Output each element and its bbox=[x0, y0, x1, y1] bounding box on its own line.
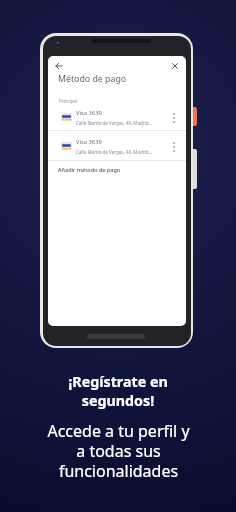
staticText: Accede a tu perfil y a todas sus funcion… bbox=[47, 420, 190, 481]
staticText: ¡Regístrate en segundos! bbox=[68, 372, 168, 410]
staticText: Calle Martín de Vargas, 40, Madrid... bbox=[76, 149, 153, 155]
staticText: Visa 3639 bbox=[76, 109, 102, 117]
button[interactable] bbox=[170, 141, 178, 153]
staticText: Principal bbox=[59, 98, 78, 104]
staticText: Visa 3639 bbox=[76, 138, 102, 146]
button[interactable] bbox=[171, 62, 179, 70]
staticText: Calle Martín de Vargas, 40, Madrid... bbox=[76, 120, 153, 126]
button[interactable]: Añadir método de pago bbox=[58, 166, 121, 173]
button[interactable]: Visa 3639 bbox=[48, 137, 186, 159]
button[interactable] bbox=[55, 62, 63, 70]
button[interactable] bbox=[170, 112, 178, 124]
button[interactable]: Visa 3639 bbox=[48, 108, 186, 130]
staticText: Método de pago bbox=[58, 73, 127, 85]
